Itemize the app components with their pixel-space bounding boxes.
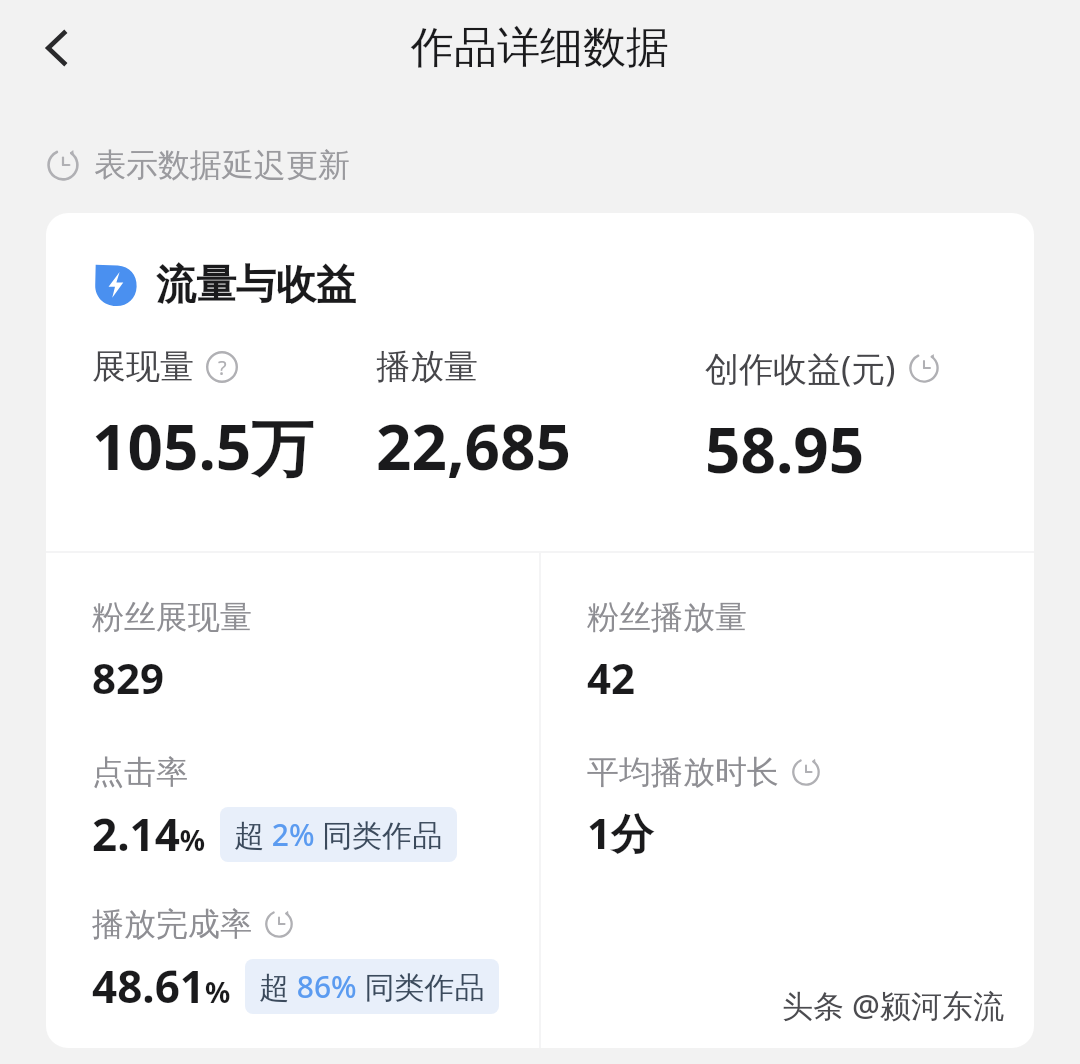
button[interactable]: 点击率 xyxy=(92,752,457,864)
staticText: 粉丝播放量 xyxy=(587,597,747,637)
staticText: 105.5万 xyxy=(92,404,314,489)
staticText: 58.95 xyxy=(705,407,865,491)
staticText: ? xyxy=(218,354,227,381)
staticText: 平均播放时长 xyxy=(587,752,779,792)
button[interactable]: 播放量 xyxy=(376,345,705,488)
button[interactable]: 平均播放时长 xyxy=(587,752,821,861)
button[interactable]: 流量与收益 xyxy=(92,259,356,309)
button[interactable]: 展现量 xyxy=(92,345,376,489)
button[interactable]: 超 2% 同类作品 xyxy=(220,807,457,862)
button[interactable]: 粉丝播放量 xyxy=(587,597,747,706)
button[interactable]: 创作收益(元) xyxy=(705,345,1034,491)
staticText: 创作收益(元) xyxy=(705,345,896,391)
staticText: 流量与收益 xyxy=(156,259,356,309)
staticText: 829 xyxy=(92,649,165,706)
staticText: 48.61% xyxy=(92,956,231,1016)
staticText: 粉丝展现量 xyxy=(92,597,252,637)
staticText: 表示数据延迟更新 xyxy=(94,145,350,185)
staticText: 42 xyxy=(587,649,636,706)
staticText: 播放量 xyxy=(376,345,478,388)
staticText: 2.14% xyxy=(92,804,206,864)
staticText: 22,685 xyxy=(376,404,571,488)
button[interactable]: 超 86% 同类作品 xyxy=(245,959,499,1014)
staticText: 作品详细数据 xyxy=(411,21,669,75)
button[interactable]: Back xyxy=(18,9,96,87)
button[interactable]: 粉丝展现量 xyxy=(92,597,252,706)
staticText: 1分 xyxy=(587,804,654,861)
staticText: 超 2% 同类作品 xyxy=(234,814,443,855)
staticText: 超 86% 同类作品 xyxy=(259,966,485,1007)
staticText: 头条 @颍河东流 xyxy=(782,984,1004,1026)
staticText: 点击率 xyxy=(92,752,188,792)
staticText: 播放完成率 xyxy=(92,904,252,944)
staticText: 展现量 xyxy=(92,345,194,388)
button[interactable]: 播放完成率 xyxy=(92,904,499,1016)
